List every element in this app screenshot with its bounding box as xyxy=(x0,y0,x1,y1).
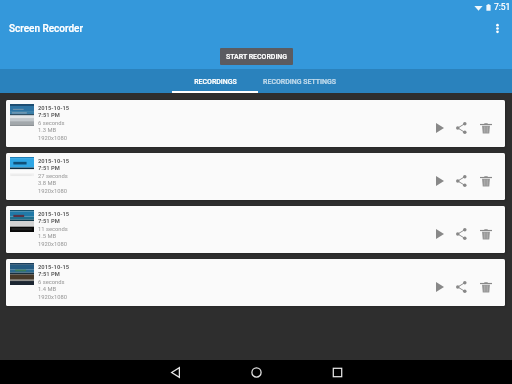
staticText: 1.5 MB xyxy=(38,233,57,240)
button[interactable]: Play xyxy=(431,172,449,190)
button[interactable]: Home xyxy=(242,360,270,384)
staticText: 7:51 xyxy=(494,2,511,12)
staticText: 11 seconds xyxy=(38,226,68,233)
staticText: 3.8 MB xyxy=(38,180,57,187)
button[interactable]: RECORDINGS xyxy=(172,69,258,93)
staticText: 1.4 MB xyxy=(38,286,57,293)
staticText: RECORDINGS xyxy=(194,78,237,86)
staticText: 6 seconds xyxy=(38,279,65,286)
button[interactable]: 2015-10-15 xyxy=(6,153,505,200)
button[interactable]: Share xyxy=(452,225,470,243)
button[interactable]: 2015-10-15 xyxy=(6,259,505,306)
staticText: Screen Recorder xyxy=(9,23,83,35)
button[interactable]: RECORDING SETTINGS xyxy=(260,69,338,93)
button[interactable]: Play xyxy=(431,225,449,243)
button[interactable]: Play xyxy=(431,278,449,296)
button[interactable]: Recent apps xyxy=(323,360,351,384)
staticText: 7:51 PM xyxy=(38,112,60,119)
staticText: 27 seconds xyxy=(38,173,68,180)
button[interactable]: Delete xyxy=(477,119,495,137)
button[interactable]: More options xyxy=(484,15,510,41)
staticText: 7:51 PM xyxy=(38,271,60,278)
staticText: 1.3 MB xyxy=(38,127,57,134)
staticText: 1920x1080 xyxy=(38,188,67,195)
staticText: 2015-10-15 xyxy=(38,105,70,112)
button[interactable]: Delete xyxy=(477,225,495,243)
button[interactable]: Delete xyxy=(477,278,495,296)
staticText: 6 seconds xyxy=(38,120,65,127)
button[interactable]: Back xyxy=(161,360,189,384)
button[interactable]: Play xyxy=(431,119,449,137)
staticText: 7:51 PM xyxy=(38,165,60,172)
button[interactable]: Delete xyxy=(477,172,495,190)
staticText: RECORDING SETTINGS xyxy=(263,78,336,86)
staticText: 2015-10-15 xyxy=(38,158,70,165)
staticText: 2015-10-15 xyxy=(38,211,70,218)
button[interactable]: Share xyxy=(452,278,470,296)
staticText: 7:51 PM xyxy=(38,218,60,225)
button[interactable]: START RECORDING xyxy=(220,48,293,65)
button[interactable]: 2015-10-15 xyxy=(6,206,505,253)
staticText: START RECORDING xyxy=(226,53,288,61)
staticText: 1920x1080 xyxy=(38,241,67,248)
button[interactable]: 2015-10-15 xyxy=(6,100,505,147)
staticText: 2015-10-15 xyxy=(38,264,70,271)
button[interactable]: Share xyxy=(452,172,470,190)
staticText: 1920x1080 xyxy=(38,294,67,301)
button[interactable]: Share xyxy=(452,119,470,137)
staticText: 1920x1080 xyxy=(38,135,67,142)
